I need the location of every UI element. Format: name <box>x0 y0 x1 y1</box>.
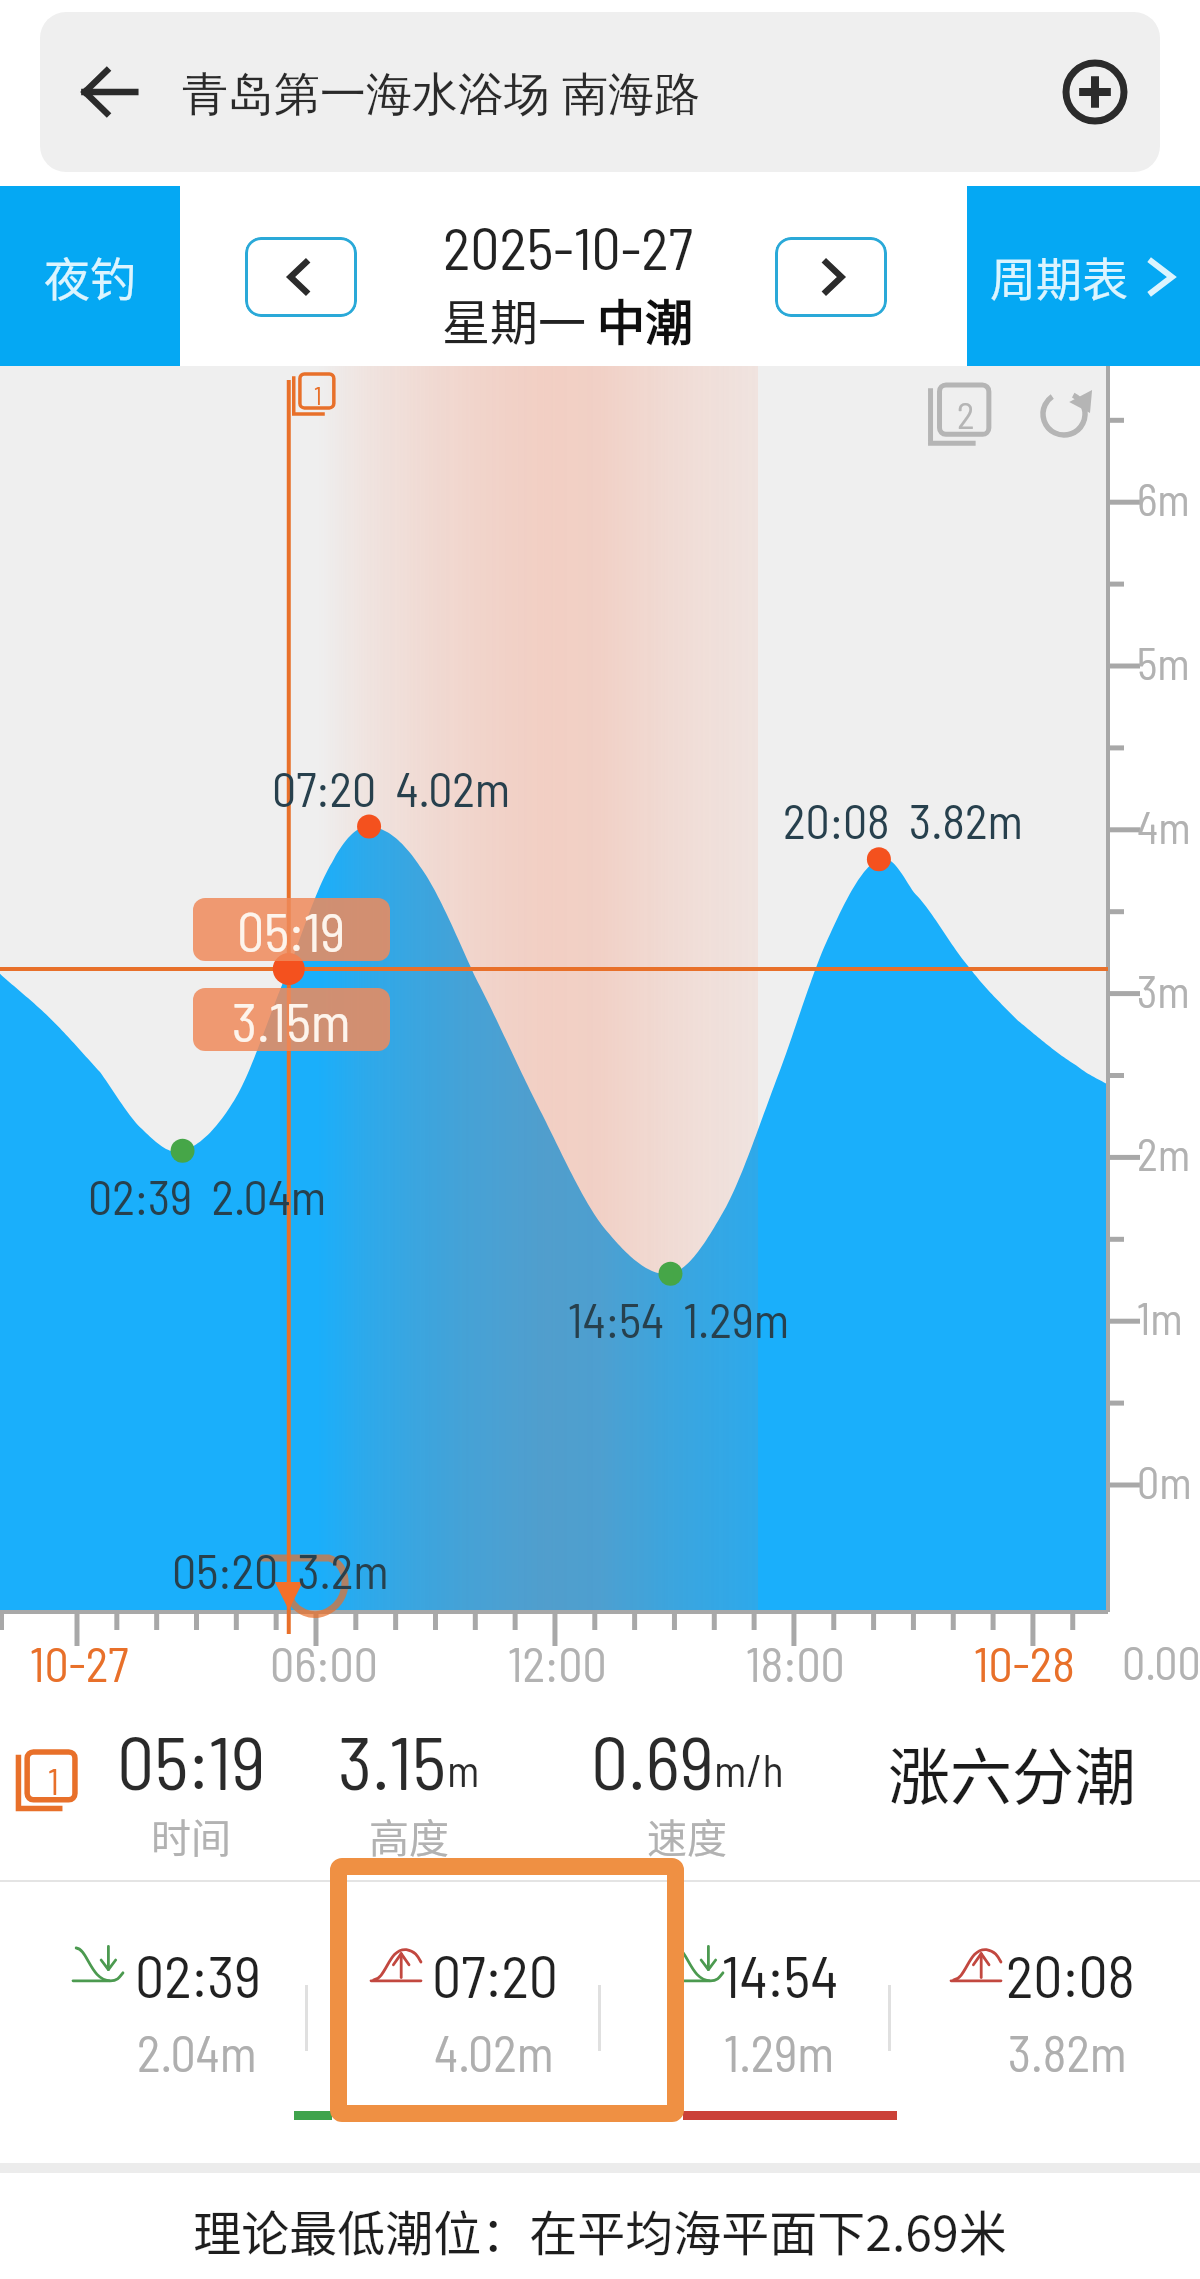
staticText: 理论最低潮位：在平均海平面下2.69米 <box>193 2195 1007 2265</box>
staticText: 10-28 <box>974 1634 1075 1692</box>
staticText: 05:20 3.2m <box>172 1541 389 1599</box>
staticText: 05:19 <box>237 898 346 961</box>
staticText: 20:08 <box>1006 1940 1135 2010</box>
staticText: 1.29m <box>724 2022 835 2082</box>
button[interactable] <box>330 1858 684 2122</box>
staticText: 夜钓 <box>44 243 136 310</box>
staticText: 中潮 <box>597 284 694 354</box>
staticText: 0.00 <box>1122 1634 1200 1689</box>
staticText: 05:19 <box>117 1716 266 1805</box>
staticText: 18:00 <box>746 1634 845 1692</box>
button[interactable] <box>894 1900 1184 2100</box>
staticText: 20:08 3.82m <box>783 791 1023 849</box>
staticText: 周期表 <box>990 243 1128 310</box>
button[interactable]: Next day <box>775 237 887 317</box>
staticText: 07:20 <box>432 1940 558 2010</box>
staticText: 1 <box>314 379 322 410</box>
staticText: 2.04m <box>137 2022 257 2082</box>
button[interactable]: Previous day <box>245 237 357 317</box>
staticText: 0m <box>1137 1455 1192 1508</box>
button[interactable]: Back <box>40 12 178 172</box>
staticText: 时间 <box>151 1807 231 1865</box>
staticText: 5m <box>1137 636 1190 689</box>
staticText: 2025-10-27 <box>443 212 693 282</box>
staticText: 2m <box>1137 1127 1191 1180</box>
staticText: 0.69 <box>591 1716 714 1805</box>
button[interactable]: 夜钓 <box>0 186 180 366</box>
button[interactable] <box>16 1900 306 2100</box>
button[interactable]: Add location <box>1030 12 1160 172</box>
staticText: 14:54 <box>722 1940 839 2010</box>
staticText: 3.15 <box>338 1716 447 1805</box>
staticText: 10-27 <box>30 1634 129 1692</box>
staticText: 1m <box>1137 1291 1183 1344</box>
staticText: 高度 <box>369 1807 449 1865</box>
staticText: 青岛第一海水浴场 南海路 <box>182 61 700 124</box>
staticText: m/h <box>714 1743 784 1796</box>
button[interactable]: 周期表 <box>967 186 1200 366</box>
button[interactable] <box>616 1900 906 2100</box>
staticText: 星期一 <box>442 284 597 354</box>
staticText: 3.15m <box>232 988 351 1051</box>
staticText: 3.82m <box>1008 2022 1127 2082</box>
staticText: 12:00 <box>508 1634 607 1692</box>
staticText: 1 <box>48 1759 59 1802</box>
staticText: 3m <box>1137 964 1190 1017</box>
staticText: 06:00 <box>270 1634 378 1692</box>
staticText: 2 <box>957 392 975 437</box>
staticText: 02:39 2.04m <box>88 1167 327 1225</box>
staticText: 07:20 4.02m <box>272 759 511 817</box>
staticText: 6m <box>1137 472 1190 525</box>
staticText: 4.02m <box>434 2022 554 2082</box>
staticText: 14:54 1.29m <box>568 1290 790 1348</box>
staticText: m <box>447 1743 480 1796</box>
button[interactable]: Refresh <box>1038 388 1090 440</box>
staticText: 速度 <box>647 1807 727 1865</box>
staticText: 02:39 <box>135 1940 261 2010</box>
staticText: 4m <box>1137 800 1191 853</box>
button[interactable]: Layers <box>928 385 992 449</box>
staticText: 涨六分潮 <box>888 1728 1137 1818</box>
button[interactable] <box>314 1900 604 2100</box>
